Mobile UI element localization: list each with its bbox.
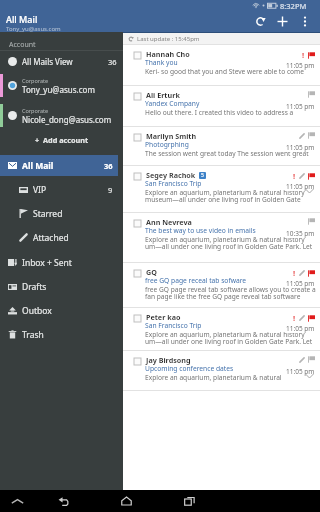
staticText: Inbox + Sent [22,257,72,269]
staticText: Explore an aquarium, planetarium & natur… [145,373,303,382]
staticText: fan page like the free GQ page reveal ta… [145,292,317,301]
button[interactable]: Peter kao [123,308,320,350]
staticText: 11:05 pm [286,61,315,70]
staticText: Starred [33,208,63,220]
staticText: All Mails View [22,56,73,67]
staticText: Attached [33,232,69,244]
staticText: Ann Nevreva [146,217,192,227]
button[interactable]: Marilyn Smith [123,127,320,165]
staticText: Last update : 15:45pm [137,35,200,43]
staticText: 11:05 pm [286,143,315,152]
staticText: Upcoming conference dates [145,364,234,373]
staticText: museum—all under one living roof in Gold… [145,195,303,204]
button[interactable]: Ali Erturk [123,86,320,126]
button[interactable]: Hide navigation bar [0,490,34,512]
button[interactable]: All Mails View [0,51,123,72]
button[interactable]: Back [34,490,94,512]
staticText: Photogrphing [145,140,189,149]
staticText: + Add account [35,135,89,145]
button[interactable]: Starred [0,203,118,224]
staticText: 11:05 pm [286,182,315,191]
button[interactable]: Jay Birdsong [123,351,320,390]
staticText: 10:35 pm [286,229,315,238]
staticText: Keri- so good that you and Steve were ab… [145,67,317,76]
staticText: Hannah Cho [146,49,190,59]
staticText: Account [9,40,36,50]
staticText: All Mail [22,160,54,172]
staticText: Trash [22,329,44,341]
staticText: Jay Birdsong [146,355,191,365]
staticText: free GQ page reveal tab software allows … [145,285,317,294]
staticText: Tony_yu@asus.com [22,84,95,95]
staticText: 11:05 pm [286,102,315,111]
staticText: 36 [104,161,113,171]
button[interactable]: Recent apps [159,490,219,512]
button[interactable]: Trash [0,324,118,345]
staticText: 11:05 pm [286,279,315,288]
button[interactable]: Hannah Cho [123,45,320,85]
staticText: Drafts [22,281,47,293]
staticText: Ali Erturk [146,90,180,100]
staticText: ! [302,50,305,60]
staticText: Yandex Company [145,99,200,108]
staticText: Explore an aquarium, planetarium & natur… [145,235,317,244]
staticText: GQ [146,267,157,277]
button[interactable]: Corporate [0,74,123,97]
staticText: 5 [201,172,204,179]
staticText: ! [293,313,296,323]
staticText: Corporate [22,107,49,114]
staticText: 11:05 pm [286,367,315,376]
staticText: um—all under one living roof in Golden G… [145,242,317,251]
button[interactable]: Compose new mail [271,13,294,30]
staticText: Thank you [145,58,178,67]
staticText: The session went great today The session… [145,149,317,158]
staticText: San Francisco Trip [145,179,202,188]
button[interactable]: Home [94,490,159,512]
staticText: Corporate [22,77,49,84]
staticText: 11:05 pm [286,324,315,333]
button[interactable]: Refresh [249,13,271,30]
staticText: Explore an aquarium, planetarium & natur… [145,188,317,197]
staticText: The best way to use video in emails [145,226,256,235]
staticText: All Mail [6,13,38,25]
button[interactable]: GQ [123,263,320,307]
button[interactable]: VIP [0,179,118,200]
staticText: Peter kao [146,312,181,322]
staticText: free GQ page receal tab sofware [145,276,247,285]
staticText: Tony_yu@asus.com [6,25,61,33]
button[interactable]: All Mail [0,155,118,176]
button[interactable]: Outbox [0,300,118,321]
staticText: Nicole_dong@asus.com [22,114,112,125]
button[interactable]: Drafts [0,276,118,297]
staticText: Outbox [22,305,52,317]
button[interactable]: Attached [0,227,118,248]
button[interactable]: More options [294,13,316,30]
staticText: Segey Rachok [146,170,196,180]
button[interactable]: + Add account [0,132,123,148]
staticText: Marilyn Smith [146,131,197,141]
staticText: ! [293,268,296,278]
button[interactable]: Corporate [0,104,123,127]
staticText: um—all under one living roof in Golden G… [145,337,317,346]
staticText: Hello out there. I created this video to… [145,108,317,117]
staticText: ! [293,171,296,181]
staticText: 9 [108,185,113,195]
staticText: 8:32PM [280,1,307,11]
staticText: VIP [33,184,47,196]
staticText: Explore an aquarium, planetarium & natur… [145,330,317,339]
button[interactable]: Ann Nevreva [123,213,320,262]
button[interactable]: Segey Rachok [123,166,320,212]
staticText: 36 [108,57,117,67]
button[interactable]: Inbox + Sent [0,252,118,273]
staticText: San Francisco Trip [145,321,202,330]
